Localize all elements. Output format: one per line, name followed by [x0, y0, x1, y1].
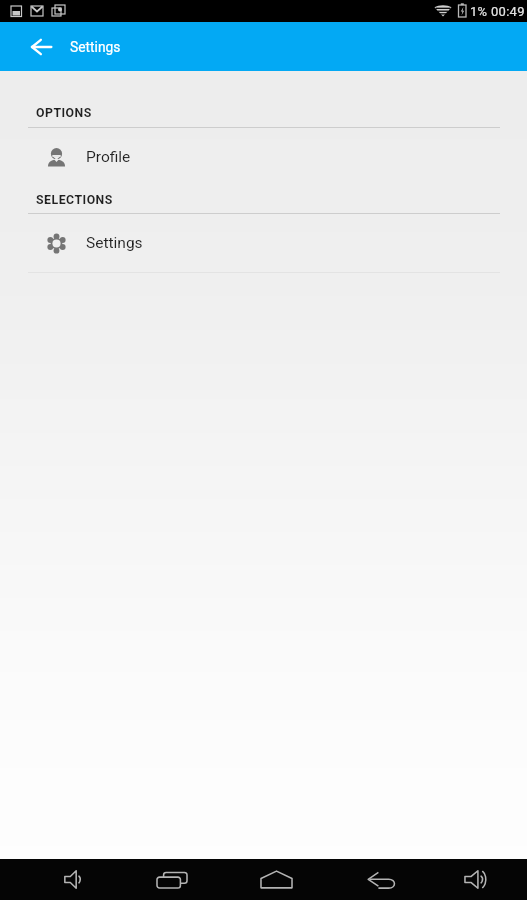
staticText: Profile — [86, 148, 131, 166]
staticText: Settings — [86, 234, 143, 252]
button[interactable]: Recent apps — [146, 859, 198, 900]
button[interactable]: Settings — [0, 221, 527, 265]
staticText: 1% 00:49 — [470, 4, 525, 19]
button[interactable]: Profile — [0, 135, 527, 179]
staticText: Settings — [70, 39, 121, 55]
button[interactable]: Back — [0, 22, 82, 71]
staticText: OPTIONS — [36, 106, 92, 120]
staticText: SELECTIONS — [36, 193, 113, 207]
button[interactable]: Back — [356, 859, 408, 900]
button[interactable]: Volume down — [48, 859, 100, 900]
button[interactable]: Home — [250, 859, 302, 900]
button[interactable]: Volume up — [450, 859, 502, 900]
